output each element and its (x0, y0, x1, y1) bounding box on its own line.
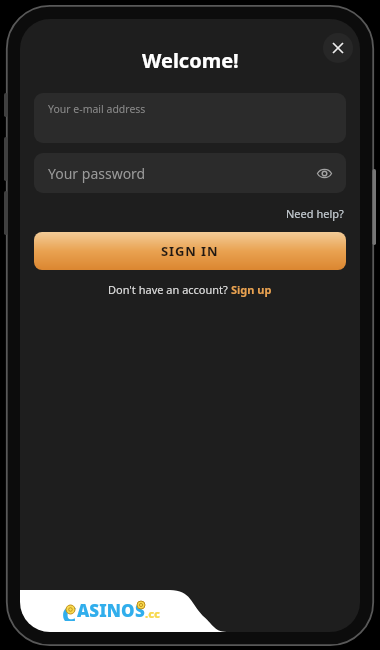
button[interactable]: Need help? (284, 204, 346, 223)
staticText: Your password (48, 164, 146, 183)
button[interactable]: SIGN IN (34, 232, 346, 270)
staticText: SIGN IN (161, 242, 219, 260)
staticText: S (135, 599, 145, 621)
staticText: ASIN (77, 599, 121, 621)
staticText: C (62, 599, 77, 621)
staticText: Need help? (286, 206, 344, 221)
staticText: Your e-mail address (48, 102, 146, 116)
button[interactable]: Close (323, 33, 353, 63)
staticText: O (121, 599, 135, 621)
button[interactable]: Sign up (231, 282, 272, 297)
staticText: .cc (145, 606, 161, 621)
staticText: Don't have an account? (108, 282, 231, 297)
button[interactable]: Your password (34, 153, 346, 193)
staticText: Sign up (231, 282, 272, 297)
button[interactable]: Show password (311, 160, 337, 186)
button[interactable]: Your e-mail address (34, 93, 346, 143)
button[interactable]: Casinos.cc home (62, 599, 174, 621)
staticText: Welcome! (142, 47, 239, 74)
